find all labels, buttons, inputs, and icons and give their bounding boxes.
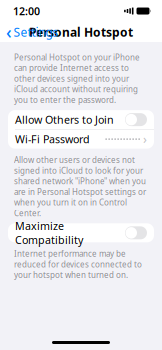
staticText: › (143, 131, 147, 147)
button[interactable]: Maximize Compatibility (8, 223, 154, 242)
staticText: Allow other users or devices not signed … (14, 155, 146, 218)
staticText: Wi-Fi Password (15, 132, 90, 146)
staticText: Personal Hotspot (29, 24, 133, 40)
staticText: Allow Others to Join (15, 112, 114, 127)
button[interactable]: ‹ (0, 16, 58, 47)
staticText: Internet performance may be reduced for … (14, 248, 142, 280)
staticText: 12:00 (13, 4, 40, 18)
button[interactable]: Allow Others to Join (8, 110, 154, 129)
staticText: Settings (13, 24, 58, 40)
staticText: Maximize Compatibility (15, 219, 83, 247)
staticText: ‹ (6, 20, 12, 43)
button[interactable]: Wi-Fi Password (8, 130, 154, 149)
staticText: Personal Hotspot on your iPhone can prov… (14, 52, 140, 105)
